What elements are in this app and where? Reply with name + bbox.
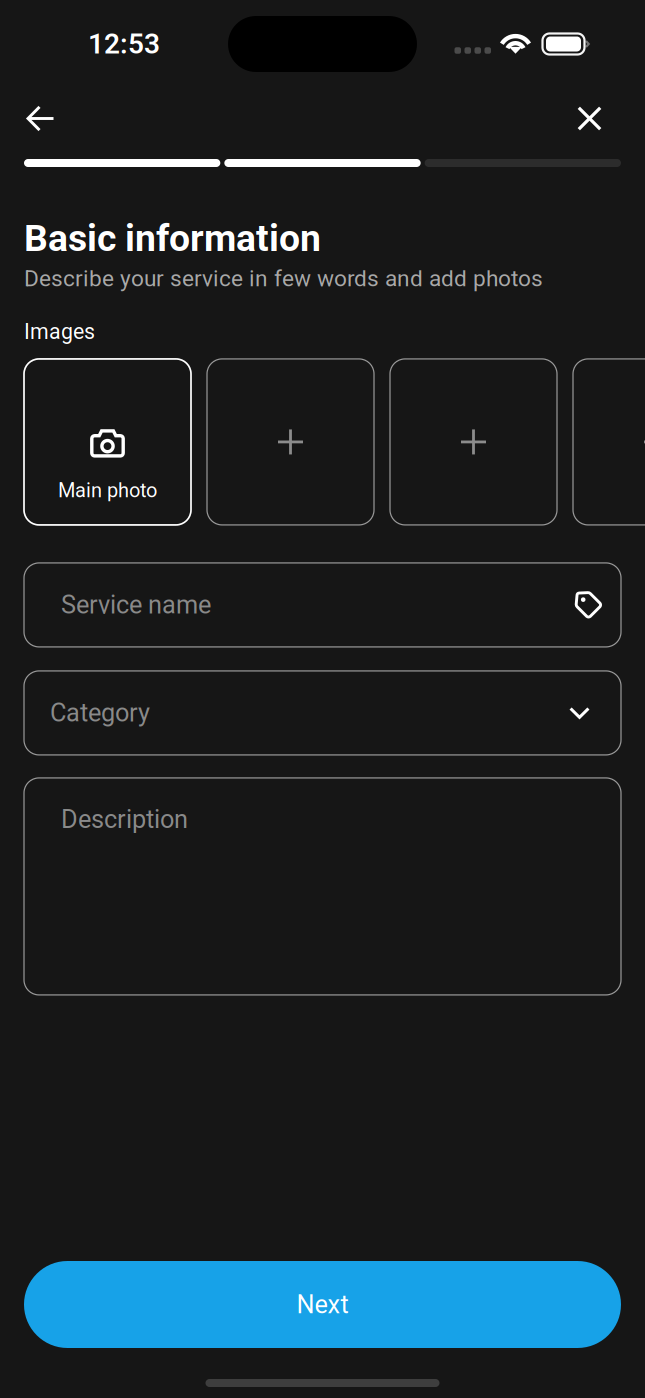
button[interactable]: Add main photo	[24, 359, 191, 525]
staticText: Describe your service in few words and a…	[24, 266, 543, 292]
staticText: Service name	[61, 590, 211, 619]
button[interactable]: Add photo	[207, 359, 374, 525]
staticText: Category	[50, 698, 150, 727]
staticText: Next	[296, 1290, 348, 1319]
staticText: Main photo	[58, 479, 157, 502]
staticText: Images	[24, 320, 95, 344]
button[interactable]: Add photo	[390, 359, 557, 525]
button[interactable]: Add photo	[573, 359, 645, 525]
button[interactable]: Service name	[24, 563, 621, 647]
button[interactable]: Close	[559, 95, 645, 142]
button[interactable]: Category	[24, 671, 621, 755]
staticText: 12:53	[88, 28, 160, 60]
button[interactable]: Description	[24, 778, 621, 995]
button[interactable]: Back	[0, 94, 73, 142]
staticText: Basic information	[24, 217, 321, 260]
staticText: Description	[61, 805, 188, 834]
button[interactable]: Next	[24, 1261, 621, 1348]
